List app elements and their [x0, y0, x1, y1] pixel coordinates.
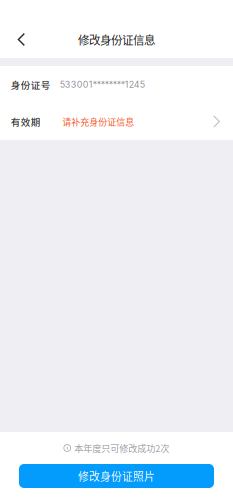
staticText: 身份证号 — [11, 78, 51, 91]
staticText: 修改身份证照片 — [78, 468, 155, 484]
staticText: 请补充身份证信息 — [62, 115, 134, 128]
button[interactable]: 返回 — [0, 21, 42, 58]
button[interactable]: 修改身份证照片 — [19, 464, 214, 488]
button[interactable]: 有效期 — [0, 103, 233, 140]
staticText: 修改身份证信息 — [78, 31, 155, 48]
staticText: 533001********1245 — [60, 79, 145, 90]
staticText: 有效期 — [11, 115, 41, 128]
staticText: 本年度只可修改成功2次 — [74, 441, 169, 455]
